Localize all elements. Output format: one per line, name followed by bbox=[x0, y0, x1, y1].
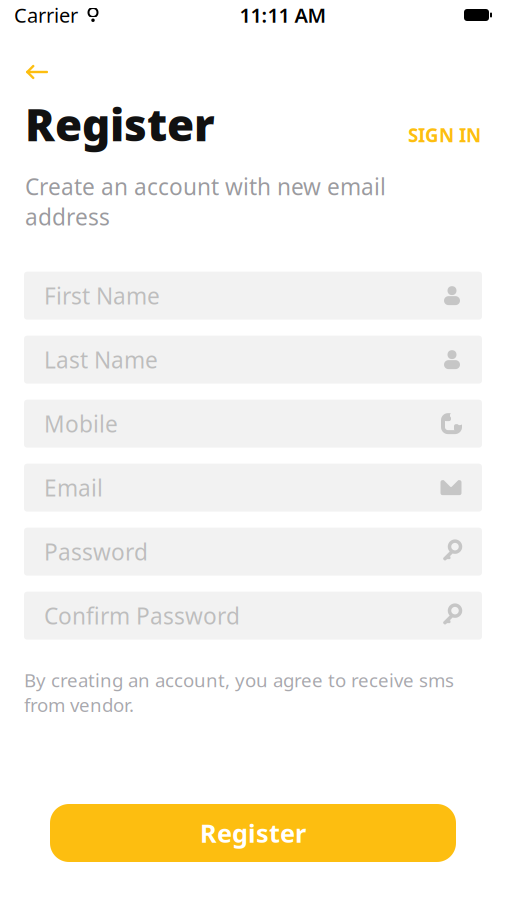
button[interactable]: Password bbox=[24, 528, 482, 576]
button[interactable]: Last Name bbox=[24, 336, 482, 384]
staticText: By creating an account, you agree to rec… bbox=[24, 668, 454, 717]
button[interactable]: SIGN IN bbox=[398, 117, 481, 153]
button[interactable]: First Name bbox=[24, 272, 482, 320]
button[interactable]: Email bbox=[24, 464, 482, 512]
staticText: Email bbox=[44, 473, 103, 503]
staticText: First Name bbox=[44, 281, 160, 311]
button[interactable]: Register bbox=[50, 804, 456, 862]
button[interactable]: Mobile bbox=[24, 400, 482, 448]
staticText: Confirm Password bbox=[44, 601, 240, 631]
staticText: Password bbox=[44, 537, 148, 567]
staticText: Carrier bbox=[14, 2, 78, 28]
button[interactable]: Confirm Password bbox=[24, 592, 482, 640]
staticText: Register bbox=[25, 95, 215, 153]
staticText: Last Name bbox=[44, 345, 158, 375]
button[interactable]: Back bbox=[21, 55, 53, 89]
staticText: Mobile bbox=[44, 409, 118, 439]
staticText: Create an account with new email address bbox=[25, 171, 386, 232]
staticText: 11:11 AM bbox=[239, 2, 326, 28]
staticText: Register bbox=[200, 816, 306, 850]
staticText: SIGN IN bbox=[408, 123, 481, 147]
